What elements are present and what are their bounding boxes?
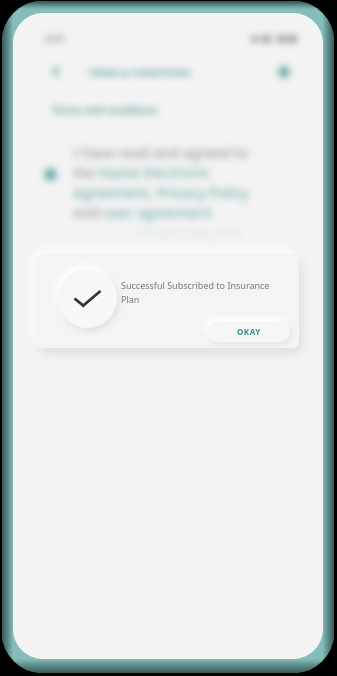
staticText: Successful Subscribed to Insurance Plan: [121, 279, 273, 305]
staticText: Terms and conditions: [52, 103, 158, 117]
button[interactable]: OKAY: [207, 321, 290, 342]
staticText: 9:41: [45, 32, 65, 44]
staticText: I have read and agreed to the Name Elect…: [73, 142, 278, 222]
staticText: OKAY: [237, 326, 261, 337]
other: Back: [50, 65, 63, 78]
staticText: TERMS & CONDITIONS: [89, 66, 191, 78]
